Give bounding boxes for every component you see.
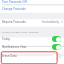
button[interactable]: Erase Data	[0, 52, 64, 60]
button[interactable]: Today	[0, 35, 64, 43]
staticText: Turn Passcode Off	[2, 0, 27, 4]
button[interactable]: Erase Data toggle	[52, 53, 61, 59]
staticText: Immediately	[42, 20, 60, 24]
button[interactable]: Today toggle	[52, 36, 61, 42]
button[interactable]: Notifications View	[0, 43, 64, 51]
staticText: Today	[2, 37, 11, 41]
staticText: Require Passcode	[2, 20, 26, 24]
staticText: ALLOW ACCESS WHEN LOCKED:	[2, 30, 39, 33]
staticText: Erase Data	[2, 54, 17, 58]
staticText: Change Passcode	[2, 7, 26, 11]
button[interactable]: Notifications View toggle	[52, 44, 61, 50]
button[interactable]: Change Passcode	[0, 5, 64, 12]
staticText: Notifications View	[2, 45, 27, 49]
button[interactable]: Turn Passcode Off	[0, 0, 64, 4]
button[interactable]: Require Passcode	[0, 18, 64, 25]
